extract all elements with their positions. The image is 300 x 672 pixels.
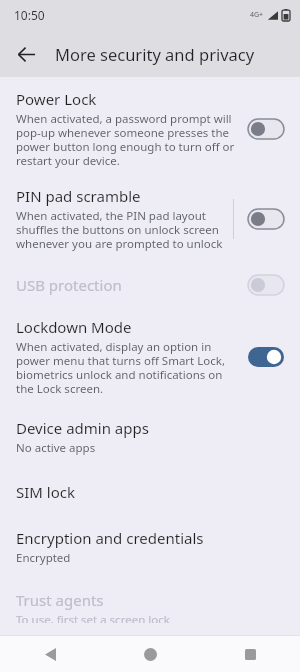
button[interactable]: Recents	[200, 636, 300, 672]
button[interactable]: USB protection	[244, 271, 288, 299]
staticText: Encryption and credentials	[16, 528, 204, 548]
staticText: When activated, a password prompt will p…	[16, 111, 236, 168]
button[interactable]: Lockdown Mode	[244, 343, 288, 371]
staticText: Power Lock	[16, 89, 97, 109]
button[interactable]: Back	[0, 636, 100, 672]
button[interactable]: Device admin apps	[0, 406, 300, 468]
staticText: Trust agents	[16, 590, 104, 610]
staticText: Device admin apps	[16, 418, 149, 438]
button[interactable]: Power Lock	[244, 115, 288, 143]
staticText: 4G+	[250, 10, 264, 20]
button[interactable]: Trust agents	[0, 578, 300, 635]
staticText: No active apps	[16, 440, 96, 456]
button[interactable]: Home	[100, 636, 200, 672]
button[interactable]: Power Lock	[0, 81, 300, 178]
staticText: PIN pad scramble	[16, 186, 141, 206]
staticText: Encrypted	[16, 550, 71, 566]
button[interactable]: Back	[8, 36, 44, 72]
button[interactable]: Encryption and credentials	[0, 516, 300, 578]
staticText: 10:50	[14, 7, 45, 23]
button[interactable]: PIN pad scramble	[0, 178, 300, 261]
button[interactable]: USB protection	[0, 261, 300, 309]
staticText: SIM lock	[16, 482, 75, 502]
staticText: When activated, display an option in pow…	[16, 339, 236, 396]
staticText: When activated, the PIN pad layout shuff…	[16, 208, 225, 251]
button[interactable]: SIM lock	[0, 468, 300, 516]
staticText: More security and privacy	[55, 43, 255, 65]
staticText: Lockdown Mode	[16, 317, 132, 337]
staticText: USB protection	[16, 275, 122, 295]
button[interactable]: Lockdown Mode	[0, 309, 300, 406]
button[interactable]: PIN pad scramble	[244, 205, 288, 233]
staticText: To use, first set a screen lock	[16, 612, 170, 623]
